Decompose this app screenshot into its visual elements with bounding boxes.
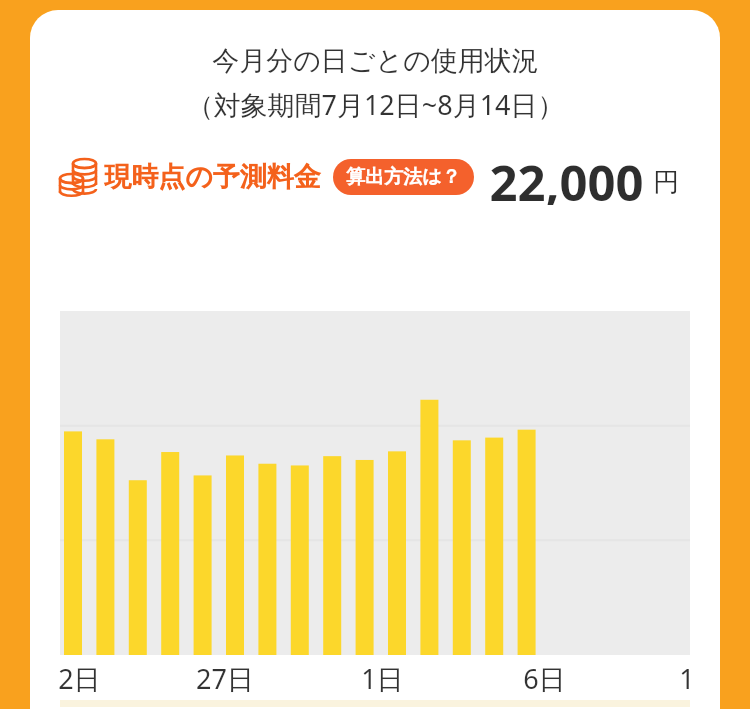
staticText: 今月分の日ごとの使用状況 <box>212 44 539 78</box>
staticText: 1日 <box>361 660 404 697</box>
staticText: 1 <box>679 660 695 697</box>
staticText: 現時点の予測料金 <box>104 160 321 194</box>
staticText: 6日 <box>523 660 566 697</box>
staticText: （対象期間7月12日~8月14日） <box>186 86 565 123</box>
button[interactable]: 算出方法は？ <box>333 159 474 195</box>
staticText: 2日 <box>58 660 101 697</box>
staticText: 円 <box>653 166 679 199</box>
staticText: 算出方法は？ <box>346 165 461 189</box>
staticText: 27日 <box>196 660 254 697</box>
other: Coins <box>58 155 98 199</box>
staticText: 22,000 <box>489 149 644 205</box>
